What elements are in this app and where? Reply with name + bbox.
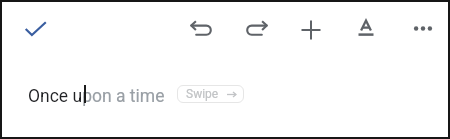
button[interactable]: Add xyxy=(291,10,331,50)
staticText: Swipe xyxy=(186,87,219,101)
button[interactable]: Swipe xyxy=(177,85,244,103)
button[interactable]: Text formatting xyxy=(346,10,386,50)
button[interactable]: Redo xyxy=(236,10,276,50)
staticText: Once upon a time xyxy=(28,86,165,107)
button[interactable]: More options xyxy=(403,10,443,50)
button[interactable]: Done xyxy=(17,9,59,51)
button[interactable]: Undo xyxy=(182,10,222,50)
